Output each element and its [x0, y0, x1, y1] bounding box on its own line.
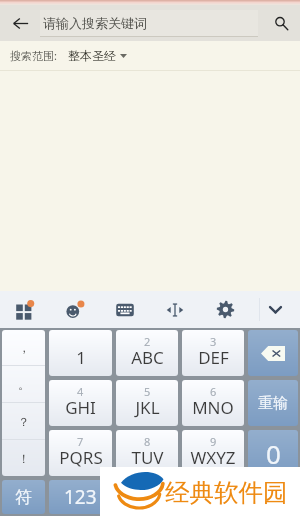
staticText: 5	[144, 384, 151, 399]
button[interactable]: Settings	[200, 291, 250, 328]
staticText: ？	[18, 414, 30, 429]
staticText: 整本圣经	[68, 48, 116, 63]
button[interactable]: ！	[2, 440, 45, 476]
staticText: 经典软件园	[165, 477, 288, 508]
staticText: 请输入搜索关键词	[43, 15, 147, 31]
staticText: 重输	[258, 394, 288, 413]
button[interactable]: 0	[248, 430, 298, 476]
staticText: PQRS	[59, 446, 103, 469]
staticText: 123	[64, 484, 97, 510]
button[interactable]: Emoji	[50, 291, 100, 328]
button[interactable]: 重输	[248, 380, 298, 426]
staticText: ，	[18, 340, 30, 355]
button[interactable]: Stickers	[0, 291, 50, 328]
staticText: 6	[210, 384, 217, 399]
button[interactable]: 符	[2, 480, 45, 514]
staticText: 符	[15, 487, 32, 508]
button[interactable]: 3	[182, 330, 244, 376]
button[interactable]: Back	[0, 5, 40, 41]
staticText: 搜索范围:	[10, 48, 57, 63]
button[interactable]: Move cursor	[150, 291, 200, 328]
staticText: ！	[18, 451, 30, 466]
staticText: 。	[18, 377, 30, 392]
staticText: GHI	[65, 396, 96, 419]
staticText: 4	[77, 384, 84, 399]
button[interactable]: 请输入搜索关键词	[40, 10, 258, 37]
staticText: 2	[144, 334, 151, 349]
staticText: WXYZ	[190, 446, 236, 469]
button[interactable]: ？	[2, 403, 45, 439]
button[interactable]: Switch keyboard	[100, 291, 150, 328]
button[interactable]: Search	[262, 5, 300, 41]
staticText: JKL	[135, 396, 160, 419]
button[interactable]: 。	[2, 366, 45, 402]
button[interactable]: 9	[182, 430, 244, 476]
button[interactable]: 8	[116, 430, 178, 476]
staticText: 1	[76, 346, 86, 369]
button[interactable]: 4	[49, 380, 112, 426]
button[interactable]: 整本圣经	[68, 48, 127, 63]
button[interactable]: 1	[49, 330, 112, 376]
staticText: ABC	[131, 346, 164, 369]
staticText: 7	[77, 434, 84, 449]
staticText: 3	[210, 334, 217, 349]
staticText: 9	[210, 434, 217, 449]
staticText: 8	[144, 434, 151, 449]
button[interactable]: Hide keyboard	[250, 291, 300, 328]
button[interactable]: Backspace	[248, 330, 298, 376]
button[interactable]: 2	[116, 330, 178, 376]
button[interactable]: ，	[2, 330, 45, 365]
staticText: 0	[266, 436, 281, 471]
button[interactable]: 6	[182, 380, 244, 426]
button[interactable]: Space	[115, 480, 298, 514]
button[interactable]: 5	[116, 380, 178, 426]
button[interactable]: 123	[49, 480, 111, 514]
staticText: DEF	[198, 346, 229, 369]
staticText: TUV	[131, 446, 164, 469]
staticText: MNO	[192, 396, 234, 419]
button[interactable]: 7	[49, 430, 112, 476]
